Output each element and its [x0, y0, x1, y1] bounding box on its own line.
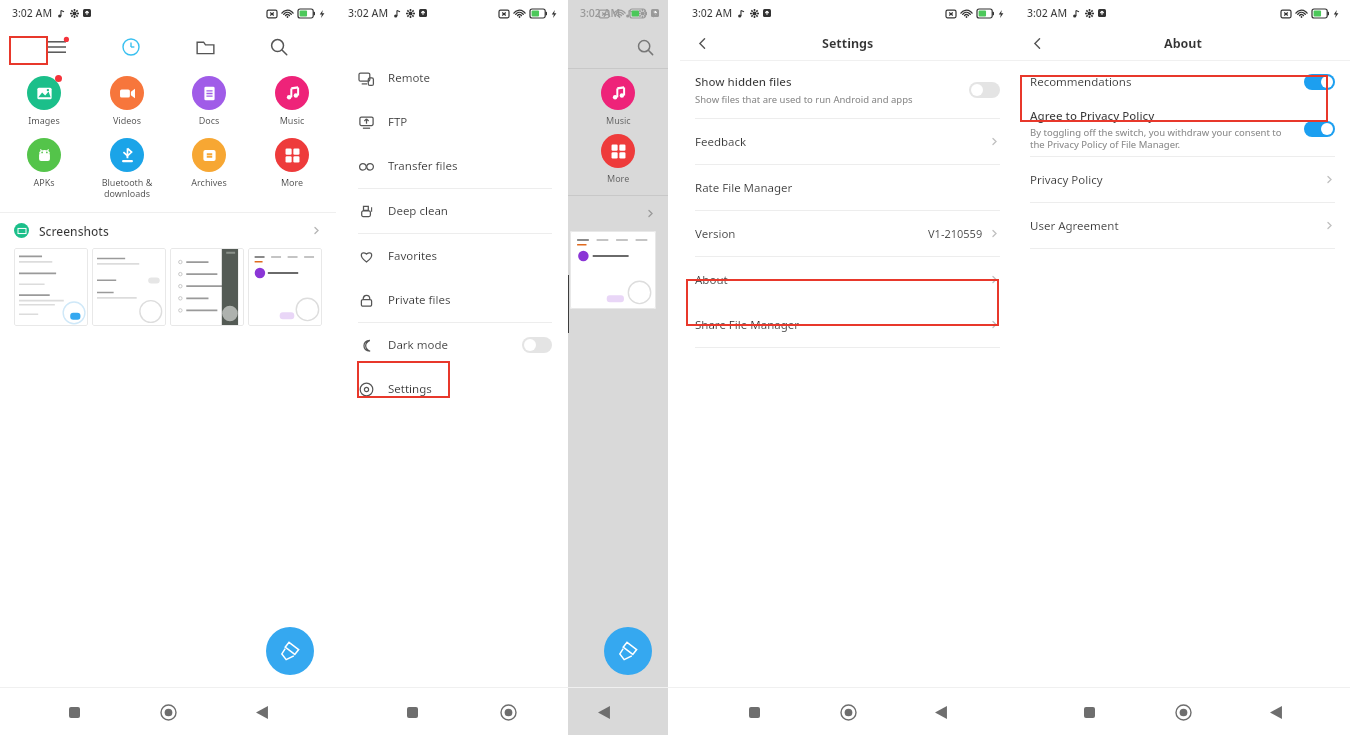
staticText: 3:02 AM — [1027, 6, 1068, 20]
staticText: More — [253, 176, 331, 188]
button[interactable]: Images — [5, 74, 83, 128]
staticText: FTP — [388, 114, 552, 130]
button[interactable] — [170, 248, 244, 326]
button[interactable]: Recents — [1069, 692, 1109, 732]
button[interactable]: Back — [584, 692, 624, 732]
staticText: Private files — [388, 292, 552, 308]
button[interactable]: Home — [148, 692, 188, 732]
button[interactable]: Recents — [734, 692, 774, 732]
button[interactable]: Recommendations — [1015, 61, 1350, 102]
button[interactable]: Videos — [88, 74, 166, 128]
button[interactable] — [92, 248, 166, 326]
button[interactable] — [1304, 121, 1335, 137]
button[interactable]: Menu — [40, 30, 74, 64]
staticText: Version — [695, 226, 928, 242]
button[interactable] — [1304, 74, 1335, 90]
button[interactable]: Agree to Privacy Policy — [1015, 102, 1350, 156]
staticText: Privacy Policy — [1030, 172, 1324, 188]
staticText: V1-210559 — [928, 226, 983, 241]
button[interactable]: Back — [1256, 692, 1296, 732]
button[interactable] — [969, 82, 1000, 98]
button[interactable]: Home — [1163, 692, 1203, 732]
button[interactable]: FTP — [336, 100, 568, 144]
button[interactable]: Screenshots — [0, 213, 336, 248]
button[interactable]: Remote — [336, 56, 568, 100]
button[interactable]: Clean — [266, 627, 314, 675]
button[interactable]: Settings — [336, 367, 568, 411]
staticText: 3:02 AM — [580, 6, 621, 20]
staticText: APKs — [5, 176, 83, 188]
button[interactable]: Clean — [604, 627, 652, 675]
staticText: Transfer files — [388, 158, 552, 174]
button[interactable]: Rate File Manager — [680, 165, 1015, 210]
staticText: Show hidden files — [695, 74, 792, 90]
button[interactable]: Bluetooth & downloads — [88, 136, 166, 201]
button[interactable]: Transfer files — [336, 144, 568, 188]
staticText: User Agreement — [1030, 218, 1324, 234]
staticText: Share File Manager — [695, 317, 989, 333]
button[interactable]: Privacy Policy — [1015, 157, 1350, 202]
staticText: Bluetooth & downloads — [88, 176, 166, 199]
staticText: 3:02 AM — [692, 6, 733, 20]
staticText: Images — [5, 114, 83, 126]
staticText: 3:02 AM — [12, 6, 53, 20]
button[interactable]: Back — [688, 29, 716, 57]
staticText: By toggling off the switch, you withdraw… — [1030, 126, 1296, 151]
staticText: More — [607, 172, 630, 184]
button[interactable]: Search — [262, 30, 296, 64]
button[interactable]: APKs — [5, 136, 83, 190]
button[interactable]: Dark mode — [336, 323, 568, 367]
button[interactable] — [14, 248, 88, 326]
staticText: Archives — [170, 176, 248, 188]
button[interactable]: Recent — [114, 30, 148, 64]
button[interactable]: Version — [680, 211, 1015, 256]
button[interactable]: Home — [488, 692, 528, 732]
button[interactable]: Show hidden files — [680, 61, 1015, 118]
button[interactable]: Favorites — [336, 234, 568, 278]
staticText: Recommendations — [1030, 74, 1304, 90]
staticText: Agree to Privacy Policy — [1030, 108, 1155, 124]
button[interactable]: Deep clean — [336, 189, 568, 233]
button[interactable]: User Agreement — [1015, 203, 1350, 248]
staticText: Videos — [88, 114, 166, 126]
button[interactable]: Recents — [392, 692, 432, 732]
button[interactable]: Back — [1023, 29, 1051, 57]
button[interactable]: Feedback — [680, 119, 1015, 164]
staticText: Deep clean — [388, 203, 552, 219]
button[interactable] — [522, 337, 552, 353]
staticText: Rate File Manager — [695, 180, 1000, 196]
button[interactable]: More — [253, 136, 331, 190]
staticText: About — [695, 272, 989, 288]
staticText: Music — [606, 114, 631, 126]
staticText: Music — [253, 114, 331, 126]
staticText: Remote — [388, 70, 552, 86]
button[interactable]: Music — [253, 74, 331, 128]
button[interactable]: Docs — [170, 74, 248, 128]
staticText: 3:02 AM — [348, 6, 389, 20]
button[interactable]: Home — [828, 692, 868, 732]
staticText: Settings — [822, 35, 874, 52]
button[interactable] — [570, 231, 656, 309]
staticText: Feedback — [695, 134, 989, 150]
staticText: About — [1164, 35, 1202, 52]
button[interactable]: Archives — [170, 136, 248, 190]
button[interactable]: Recents — [54, 692, 94, 732]
staticText: Favorites — [388, 248, 552, 264]
staticText: Screenshots — [39, 223, 311, 239]
button[interactable]: Folders — [188, 30, 222, 64]
button[interactable]: Back — [242, 692, 282, 732]
button[interactable]: Share File Manager — [680, 302, 1015, 347]
button[interactable]: About — [680, 257, 1015, 302]
staticText: Settings — [388, 381, 552, 397]
staticText: Show files that are used to run Android … — [695, 93, 913, 106]
button[interactable]: Private files — [336, 278, 568, 322]
staticText: Docs — [170, 114, 248, 126]
button[interactable] — [248, 248, 322, 326]
staticText: Dark mode — [388, 337, 522, 353]
button[interactable]: Back — [921, 692, 961, 732]
